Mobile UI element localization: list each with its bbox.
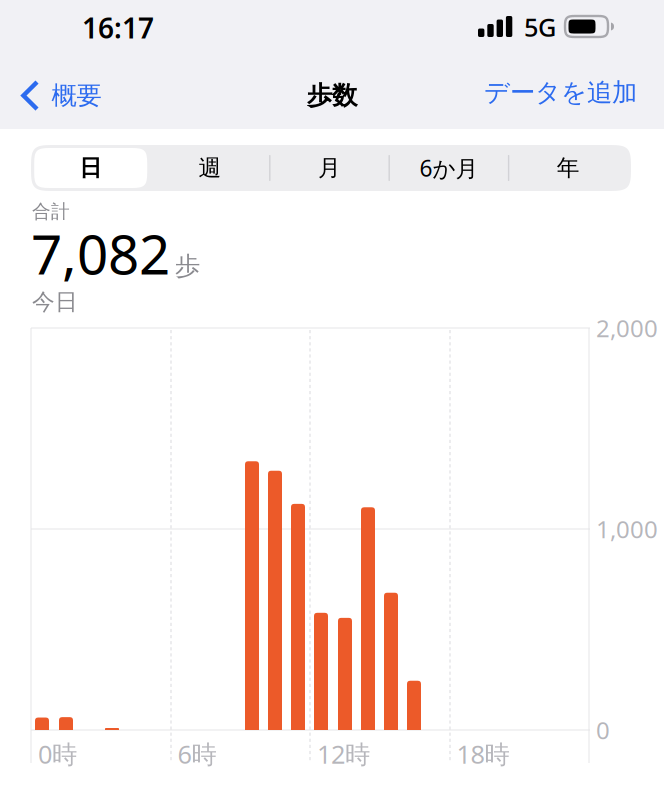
button[interactable]: 概要 [21,74,101,117]
staticText: 7,082 [31,217,170,290]
button[interactable]: 年 [509,145,628,191]
staticText: 16:17 [82,9,154,46]
staticText: 5G [524,10,556,44]
staticText: 12時 [317,737,370,771]
staticText: 1,000 [596,513,658,545]
staticText: 0 [596,714,610,746]
staticText: 月 [318,154,341,182]
staticText: 今日 [32,288,78,316]
staticText: 0時 [38,737,77,771]
staticText: 日 [79,154,102,182]
button[interactable]: 6か月 [389,145,509,191]
staticText: 6時 [177,737,216,771]
button[interactable]: 日 [31,145,150,191]
staticText: 合計 [32,200,70,223]
staticText: 2,000 [596,312,658,344]
staticText: 年 [557,154,580,182]
staticText: 概要 [51,80,101,111]
staticText: 18時 [456,737,509,771]
staticText: 歩数 [307,80,357,111]
staticText: 週 [199,154,222,182]
button[interactable]: 月 [270,145,389,191]
button[interactable]: 週 [150,145,270,191]
staticText: データを追加 [484,77,637,108]
staticText: 歩 [175,250,200,282]
button[interactable]: データを追加 [484,71,637,114]
staticText: 6か月 [419,153,478,183]
